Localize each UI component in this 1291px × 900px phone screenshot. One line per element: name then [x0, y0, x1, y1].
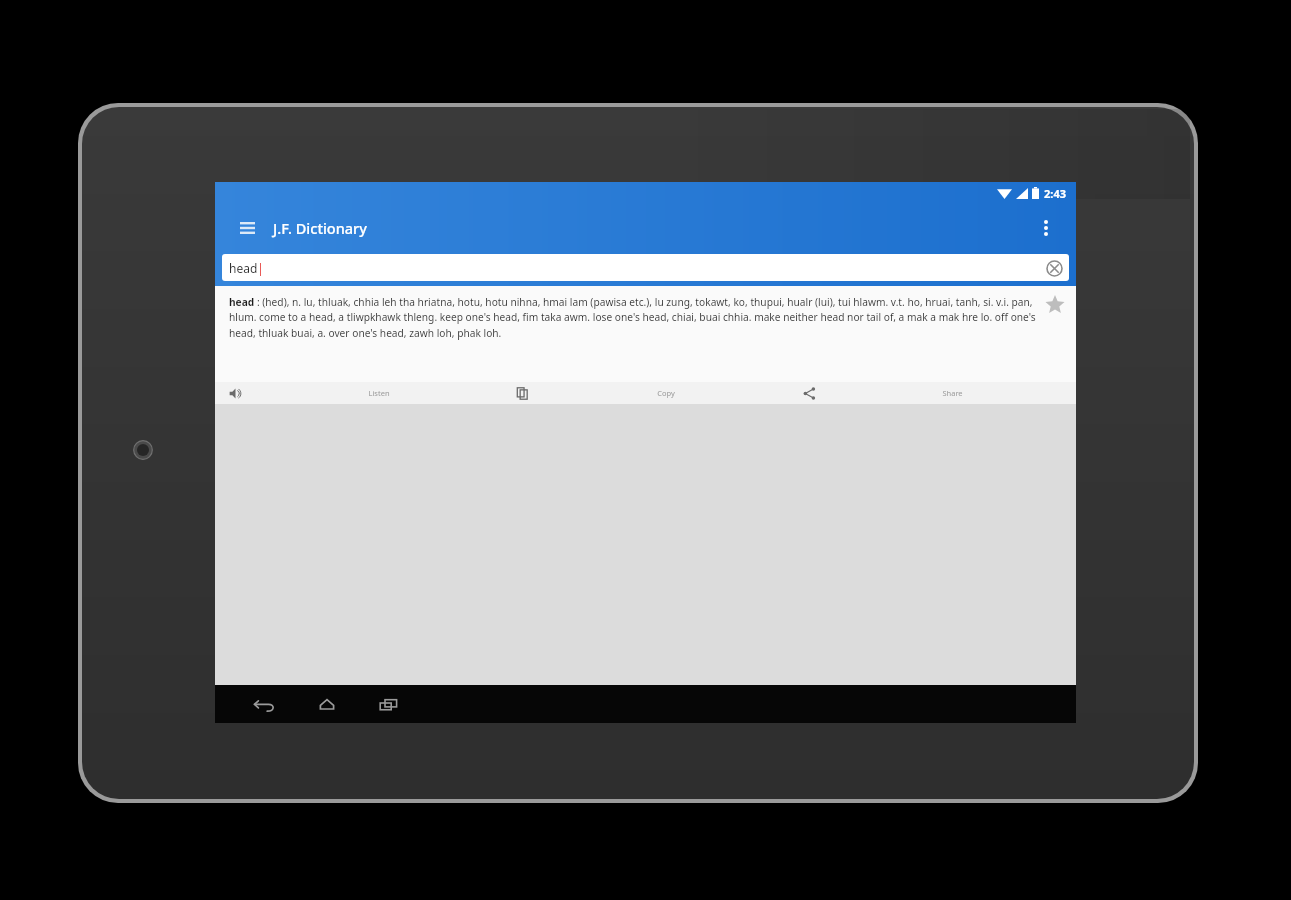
staticText: Share: [942, 388, 963, 398]
staticText: J.F. Dictionary: [273, 218, 367, 238]
button[interactable]: head : (hed), n. lu, thluak, chhia leh t…: [215, 286, 1076, 382]
button[interactable]: More options: [1028, 210, 1064, 246]
button[interactable]: head|: [222, 254, 1069, 281]
button[interactable]: Share: [789, 382, 1076, 404]
staticText: head|: [229, 260, 264, 276]
button[interactable]: Home: [299, 685, 355, 723]
button[interactable]: Add to favourites: [1040, 290, 1070, 320]
button[interactable]: Copy: [502, 382, 789, 404]
button[interactable]: Back: [237, 685, 293, 723]
staticText: head : (hed), n. lu, thluak, chhia leh t…: [229, 295, 1036, 340]
staticText: Listen: [368, 388, 390, 398]
button[interactable]: Recent apps: [361, 685, 417, 723]
button[interactable]: Clear search: [1043, 257, 1065, 279]
staticText: Copy: [657, 388, 675, 398]
staticText: 2:43: [1044, 186, 1066, 201]
button[interactable]: Listen: [215, 382, 502, 404]
button[interactable]: Open navigation menu: [229, 210, 265, 246]
